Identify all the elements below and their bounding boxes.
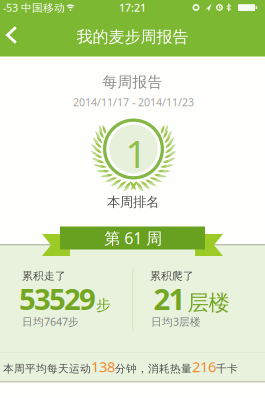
staticText: 本周排名 (107, 194, 159, 210)
staticText: 我的麦步周报告 (76, 27, 188, 47)
staticText: 本周平均每天运动 (3, 362, 91, 375)
staticText: 21 (153, 279, 185, 318)
staticText: -53 中国移动 (3, 0, 65, 15)
staticText: 分钟，消耗热量 (115, 362, 192, 375)
staticText: 2014/11/17 - 2014/11/23 (73, 95, 194, 109)
staticText: 步 (96, 296, 111, 314)
staticText: 层楼 (187, 290, 229, 316)
staticText: 53529 (19, 279, 96, 318)
staticText: 216 (192, 357, 216, 376)
staticText: 日均3层楼 (151, 314, 201, 329)
button[interactable]: Back (0, 20, 26, 50)
staticText: 1 (125, 129, 146, 178)
staticText: 138 (91, 357, 115, 376)
staticText: 17:21 (119, 0, 146, 15)
staticText: 千卡 (216, 362, 238, 375)
staticText: 累积走了 (22, 269, 66, 282)
staticText: 累积爬了 (150, 269, 194, 282)
staticText: 第 61 周 (104, 227, 162, 249)
staticText: 日均7647步 (22, 314, 79, 329)
staticText: 每周报告 (102, 73, 162, 91)
